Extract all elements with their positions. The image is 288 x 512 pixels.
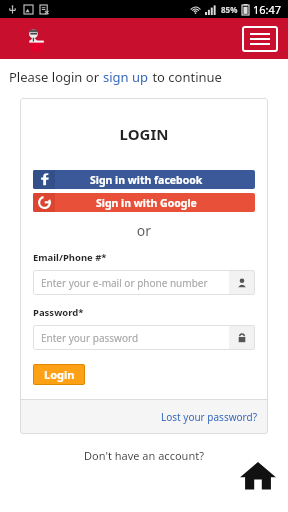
other: KFC logo <box>22 26 48 52</box>
staticText: or <box>33 221 255 240</box>
button[interactable]: sign up <box>103 68 149 86</box>
staticText: Email/Phone #* <box>33 251 107 264</box>
staticText: LOGIN <box>33 124 255 144</box>
button[interactable]: Login <box>33 364 85 385</box>
staticText: Login <box>44 367 75 382</box>
button[interactable]: Enter your e-mail or phone number <box>33 270 255 295</box>
staticText: Enter your e-mail or phone number <box>41 276 208 290</box>
staticText: Sign in with Google <box>96 196 197 210</box>
button[interactable]: Enter your password <box>33 325 255 350</box>
button[interactable]: Sign in with Google <box>33 193 255 212</box>
staticText: Don't have an account? <box>0 448 288 463</box>
staticText: to continue <box>149 68 222 86</box>
staticText: Sign in with facebook <box>90 173 203 187</box>
staticText: Enter your password <box>41 331 139 345</box>
staticText: Password* <box>33 306 84 319</box>
button[interactable]: Lost your password? <box>161 410 258 424</box>
button[interactable]: Sign in with facebook <box>33 170 255 189</box>
staticText: Please login or <box>9 68 103 86</box>
staticText: 16:47 <box>253 2 282 17</box>
staticText: 85% <box>221 4 238 15</box>
button[interactable]: Home <box>236 453 280 497</box>
button[interactable]: Menu <box>242 26 278 52</box>
